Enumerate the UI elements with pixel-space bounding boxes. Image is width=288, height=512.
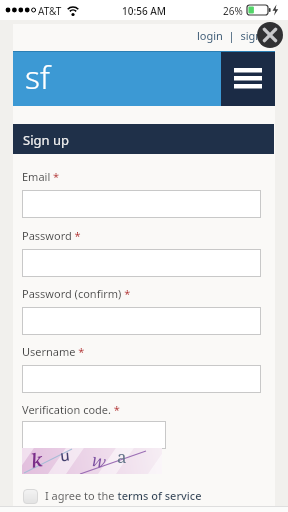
button[interactable]: login | sign up	[197, 28, 279, 43]
staticText: Username *	[22, 344, 85, 359]
staticText: Password *	[22, 228, 81, 243]
staticText: 10:56 AM	[122, 4, 166, 18]
staticText: 26%	[223, 4, 243, 18]
staticText: Email *	[22, 169, 60, 184]
staticText: a	[117, 448, 127, 468]
staticText: Password (confirm) *	[22, 286, 131, 301]
button[interactable]: sf	[13, 52, 275, 106]
staticText: AT&T	[38, 4, 62, 18]
button[interactable]	[22, 190, 261, 218]
staticText: Sign up	[23, 131, 69, 149]
button[interactable]	[23, 489, 38, 504]
button[interactable]: I agree to the terms of service	[45, 488, 202, 503]
staticText: u	[59, 448, 71, 465]
staticText: sf	[25, 55, 50, 99]
staticText: Verification code. *	[22, 402, 120, 417]
button[interactable]	[22, 421, 166, 449]
staticText: w	[90, 448, 108, 473]
button[interactable]	[22, 365, 261, 393]
button[interactable]	[221, 52, 275, 106]
staticText: k	[29, 448, 45, 474]
button[interactable]	[257, 22, 283, 48]
button[interactable]	[22, 249, 261, 277]
button[interactable]	[22, 307, 261, 335]
